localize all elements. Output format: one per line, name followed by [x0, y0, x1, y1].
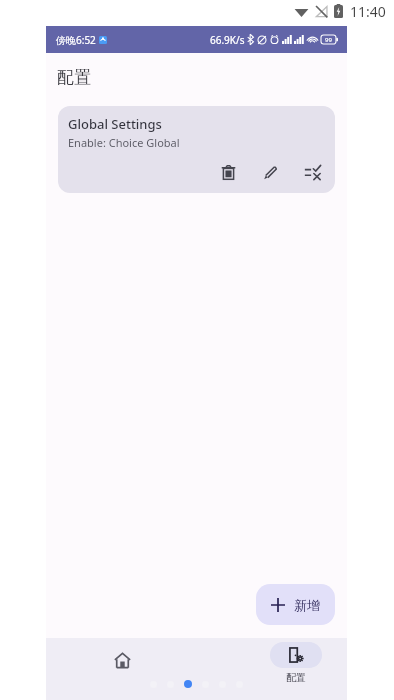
button[interactable]: Global Settings [58, 106, 335, 193]
staticText: Enable: Choice Global [68, 135, 180, 150]
button[interactable]: Edit [257, 159, 283, 185]
staticText: 11:40 [350, 2, 386, 21]
staticText: 99 [325, 36, 332, 44]
button[interactable]: 新增 [256, 584, 335, 625]
button[interactable]: Rules [299, 159, 325, 185]
staticText: 配置 [57, 67, 91, 88]
staticText: Global Settings [68, 115, 162, 133]
button[interactable]: Home [98, 644, 146, 676]
button[interactable]: 配置 [268, 642, 324, 684]
staticText: 66.9K/s [210, 33, 245, 47]
staticText: 傍晚6:52 [56, 33, 96, 47]
button[interactable]: Delete [215, 159, 241, 185]
staticText: 配置 [286, 671, 306, 684]
staticText: 新增 [294, 597, 320, 613]
